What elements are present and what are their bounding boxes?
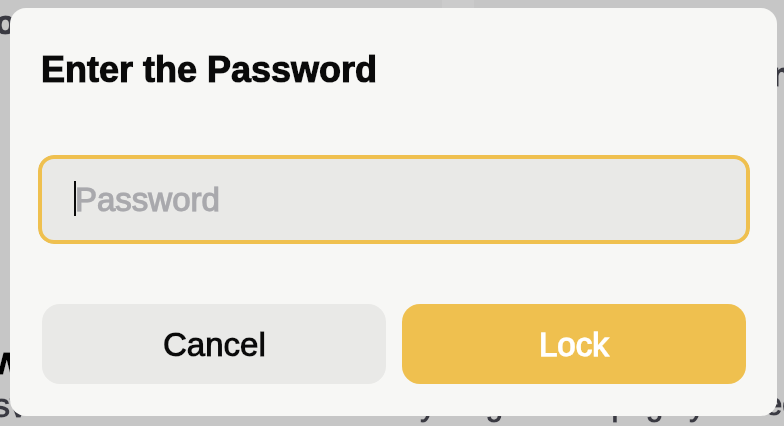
button[interactable]: Lock xyxy=(402,304,746,384)
staticText: sv xyxy=(0,386,27,424)
staticText: Cancel xyxy=(163,326,266,363)
staticText: o xyxy=(0,3,16,41)
staticText: Lock xyxy=(539,326,609,363)
staticText: n xyxy=(771,55,784,93)
staticText: w xyxy=(0,340,22,382)
staticText: Password xyxy=(75,181,220,218)
staticText: everything on this page you need xyxy=(360,387,784,422)
button[interactable]: Cancel xyxy=(42,304,386,384)
button[interactable]: Password xyxy=(38,155,750,244)
staticText: Enter the Password xyxy=(41,49,378,89)
